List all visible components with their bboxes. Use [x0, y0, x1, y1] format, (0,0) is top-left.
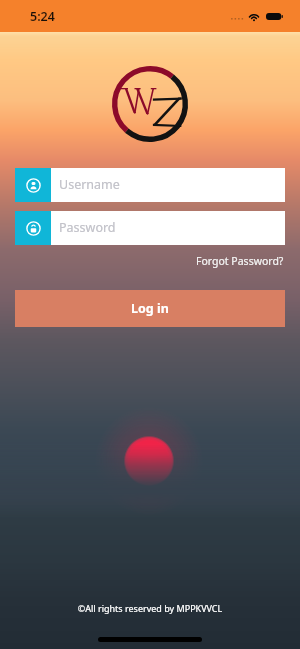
button[interactable]: Password [15, 211, 285, 245]
button[interactable]: Log in [15, 290, 285, 327]
staticText: 5:24 [30, 8, 55, 25]
staticText: Log in [131, 300, 169, 317]
button[interactable]: Username [15, 168, 285, 202]
staticText: ©All rights reserved by MPPKVVCL [0, 602, 300, 614]
staticText: Password [59, 219, 116, 236]
staticText: Username [59, 176, 120, 193]
button[interactable]: Forgot Password? [194, 252, 286, 270]
